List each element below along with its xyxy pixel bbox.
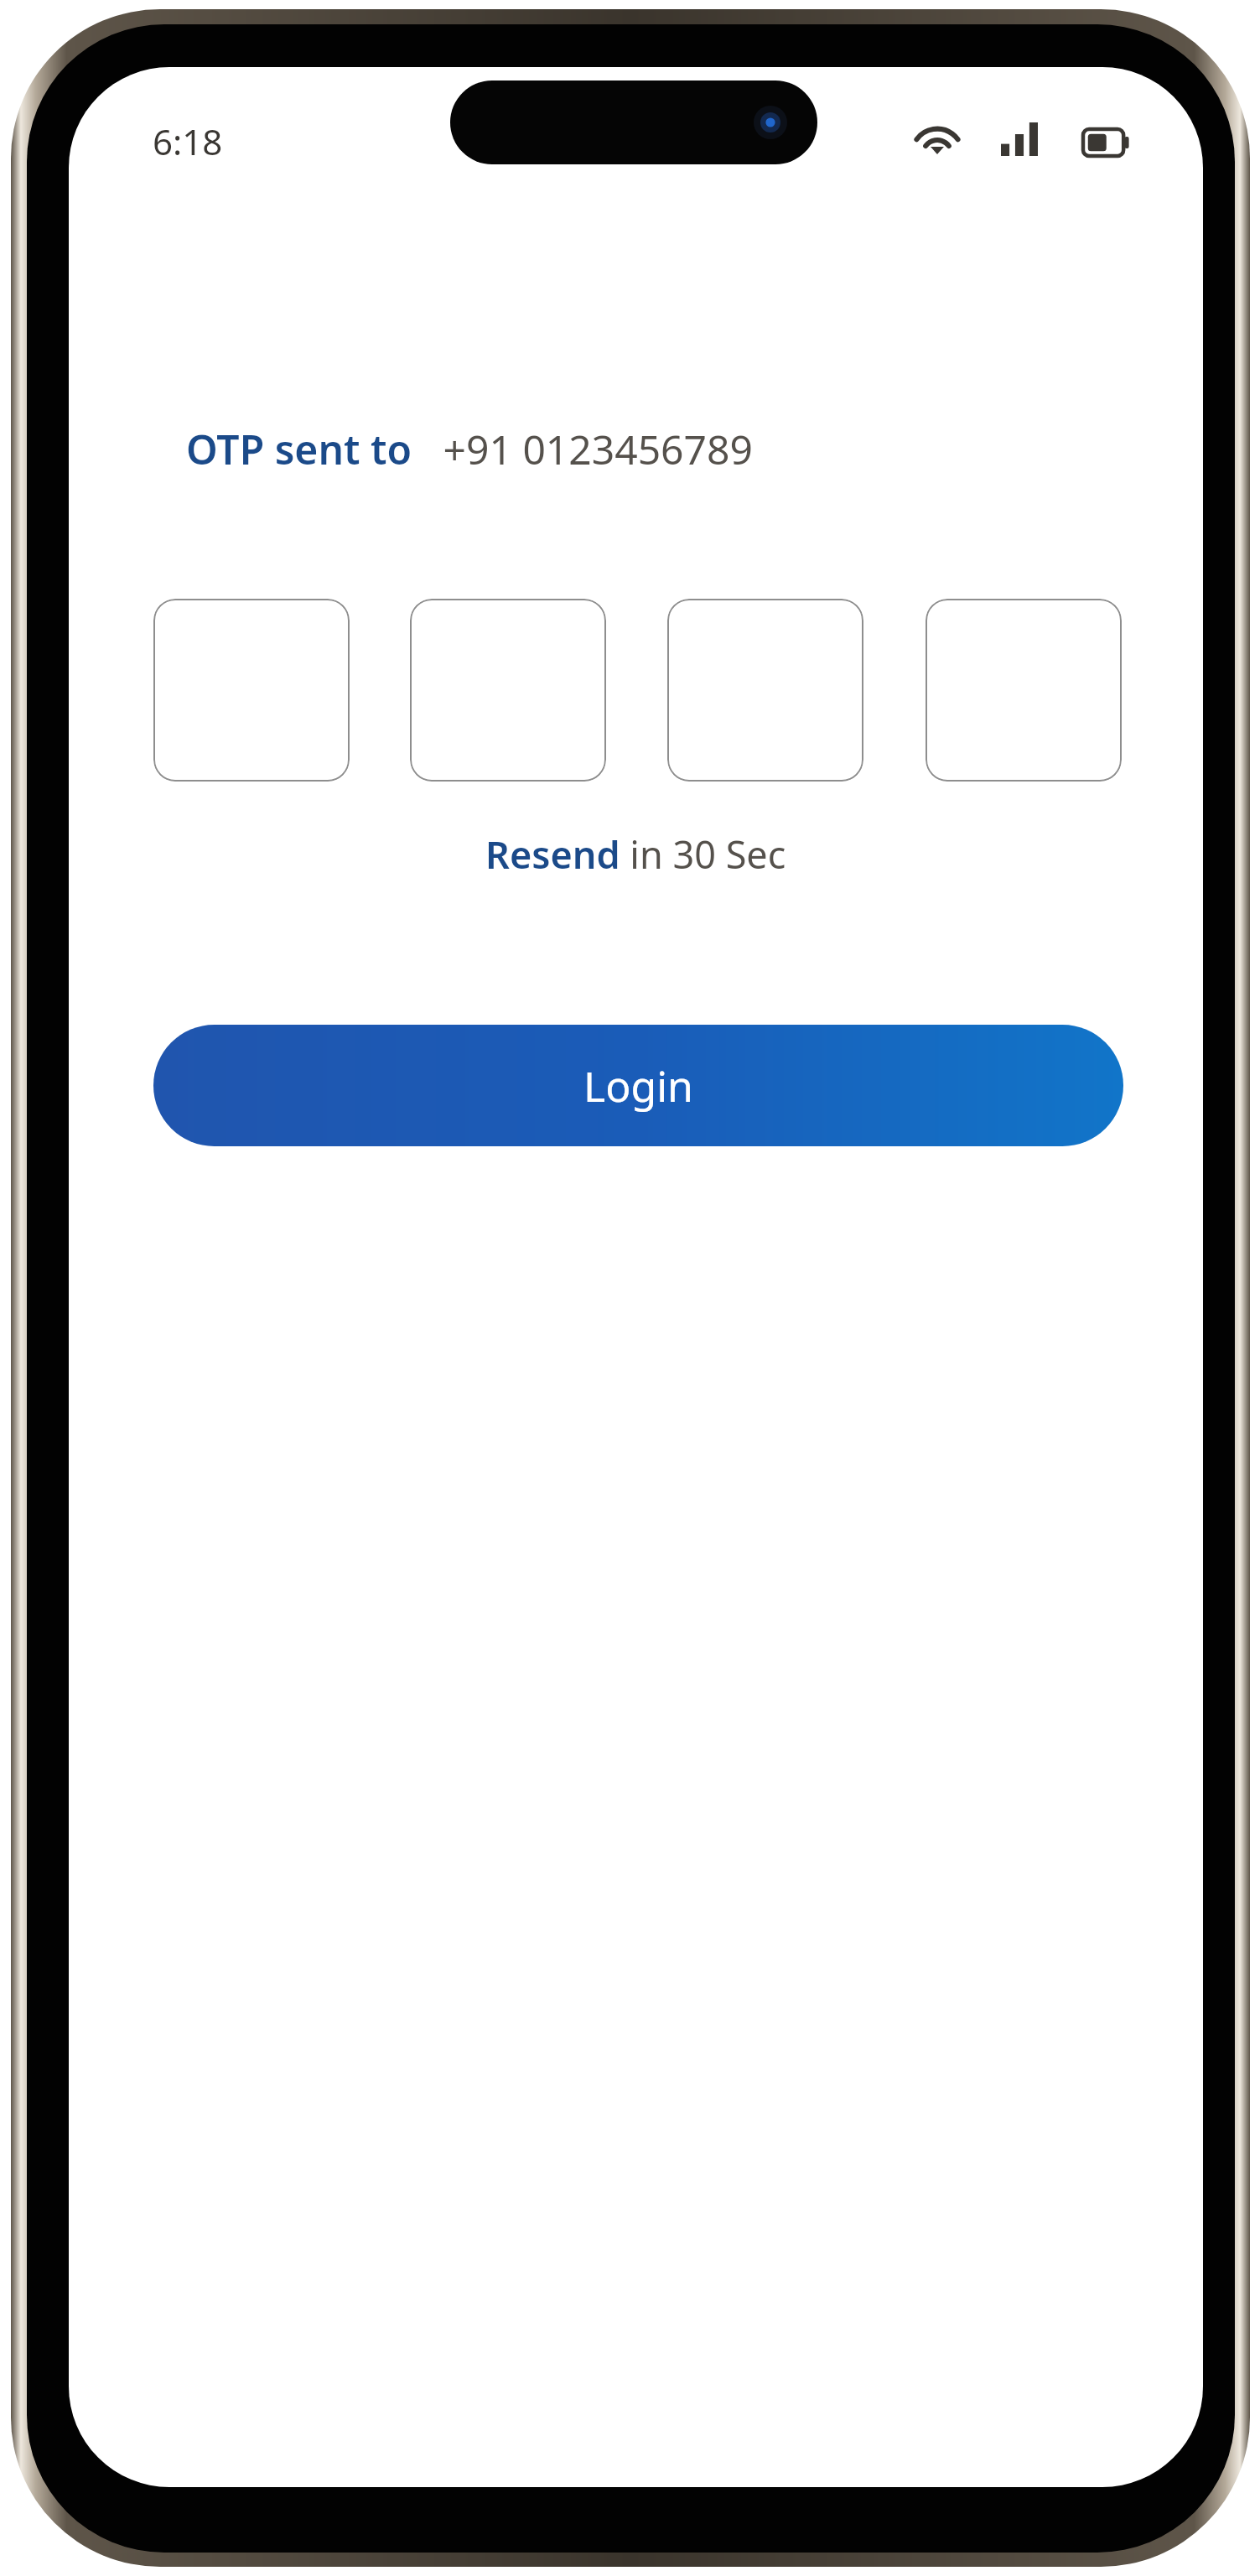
button[interactable]: Login xyxy=(153,1025,1123,1146)
staticText: Login xyxy=(583,1057,693,1114)
button[interactable]: OTP digit 2 xyxy=(410,599,606,782)
button[interactable]: Resend in 30 Sec xyxy=(485,828,786,880)
staticText: Resend in 30 Sec xyxy=(485,828,786,880)
staticText: 6:18 xyxy=(153,117,223,165)
staticText: OTP sent to +91 0123456789 xyxy=(186,422,753,476)
button[interactable]: OTP digit 1 xyxy=(153,599,350,782)
button[interactable]: OTP digit 3 xyxy=(667,599,863,782)
button[interactable]: OTP digit 4 xyxy=(926,599,1122,782)
